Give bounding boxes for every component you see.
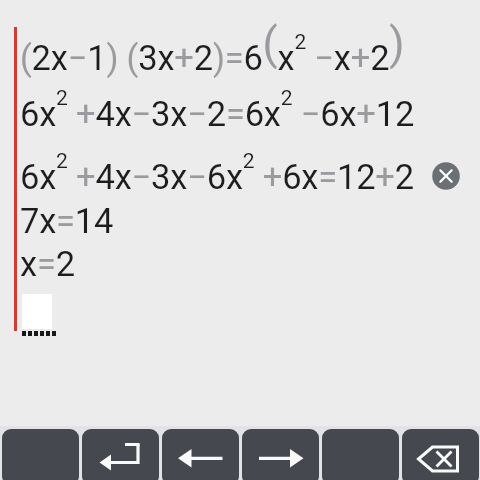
staticText: 7x=14 — [20, 201, 114, 241]
staticText: 6x2 +4x−3x−6x2 +6x=12+2 — [20, 149, 414, 197]
button[interactable] — [2, 429, 79, 480]
button[interactable] — [432, 162, 460, 190]
staticText: (2x−1) (3x+2)=6(x2 −x+2) — [20, 18, 405, 78]
button[interactable] — [402, 429, 479, 480]
button[interactable] — [242, 429, 319, 480]
button[interactable] — [82, 429, 159, 480]
button[interactable] — [162, 429, 239, 480]
button[interactable] — [322, 429, 399, 480]
staticText: x=2 — [20, 244, 75, 284]
staticText: 6x2 +4x−3x−2=6x2 −6x+12 — [20, 86, 415, 134]
